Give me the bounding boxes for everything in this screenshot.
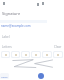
staticText: Signature <box>2 11 21 16</box>
staticText: Undo <box>1 75 8 78</box>
button[interactable] <box>42 51 52 58</box>
staticText: Letters <box>2 45 12 49</box>
button[interactable] <box>21 51 30 58</box>
staticText: name@example.com <box>1 24 31 28</box>
button[interactable] <box>53 51 63 58</box>
staticText: Label <box>2 35 10 39</box>
button[interactable]: Undo <box>0 73 9 79</box>
button[interactable] <box>1 51 10 58</box>
button[interactable] <box>11 51 20 58</box>
staticText: Clear <box>54 45 62 49</box>
button[interactable]: Accept <box>38 73 44 79</box>
button[interactable] <box>31 51 41 58</box>
